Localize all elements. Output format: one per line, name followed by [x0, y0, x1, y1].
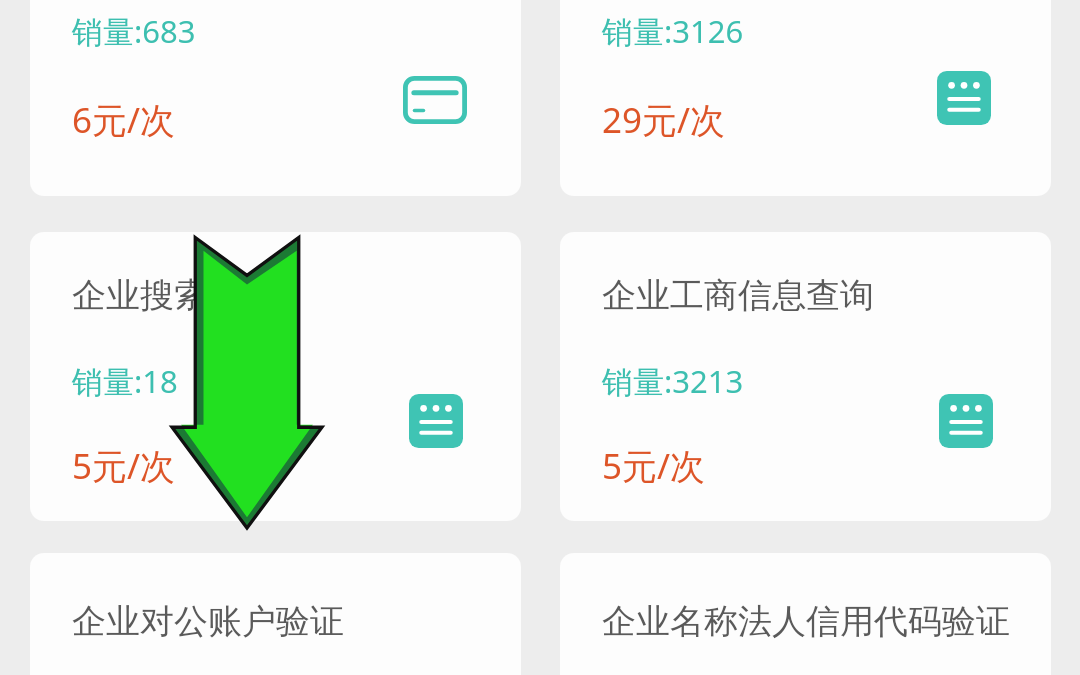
- button[interactable]: 企业工商信息查询: [560, 232, 1051, 521]
- staticText: 销量:683: [72, 10, 196, 52]
- staticText: 销量:18: [72, 360, 178, 402]
- staticText: 销量:3213: [602, 360, 744, 402]
- other: Service icon: [937, 71, 991, 125]
- staticText: 企业名称法人信用代码验证: [602, 600, 1010, 643]
- staticText: 5元/次: [72, 442, 176, 490]
- staticText: 企业工商信息查询: [602, 274, 874, 317]
- button[interactable]: 企业对公账户验证: [30, 553, 521, 675]
- other: Service icon: [939, 394, 993, 448]
- staticText: 企业对公账户验证: [72, 600, 344, 643]
- button[interactable]: 企业搜索: [30, 232, 521, 521]
- other: Service icon: [409, 394, 463, 448]
- button[interactable]: 企业信息核验: [30, 0, 521, 196]
- button[interactable]: 企业三要素核验: [560, 0, 1051, 196]
- staticText: 企业搜索: [72, 274, 208, 317]
- other: Card icon: [403, 76, 467, 124]
- staticText: 6元/次: [72, 96, 176, 144]
- staticText: 29元/次: [602, 96, 726, 144]
- staticText: 销量:3126: [602, 10, 744, 52]
- staticText: 5元/次: [602, 442, 706, 490]
- button[interactable]: 企业名称法人信用代码验证: [560, 553, 1051, 675]
